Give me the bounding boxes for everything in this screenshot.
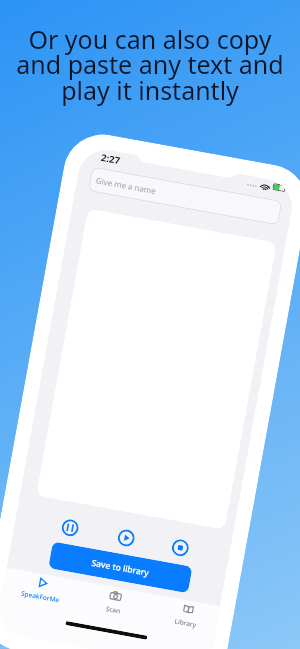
- staticText: SpeakForMe: [20, 589, 60, 604]
- button[interactable]: Play: [116, 528, 136, 548]
- button[interactable]: Pause: [60, 518, 80, 538]
- button[interactable]: [36, 208, 277, 530]
- staticText: Library: [174, 616, 197, 629]
- button[interactable]: Scan: [86, 585, 142, 619]
- button[interactable]: Save to library: [48, 541, 193, 593]
- button[interactable]: Give me a name: [88, 166, 282, 225]
- button[interactable]: Stop: [170, 538, 190, 558]
- button[interactable]: SpeakForMe: [13, 572, 69, 606]
- staticText: Or you can also copy and paste any text …: [6, 22, 294, 108]
- staticText: 2:27: [100, 151, 121, 167]
- staticText: Save to library: [91, 557, 150, 579]
- button[interactable]: Library: [159, 598, 215, 632]
- staticText: Scan: [105, 604, 121, 615]
- staticText: Give me a name: [95, 174, 157, 196]
